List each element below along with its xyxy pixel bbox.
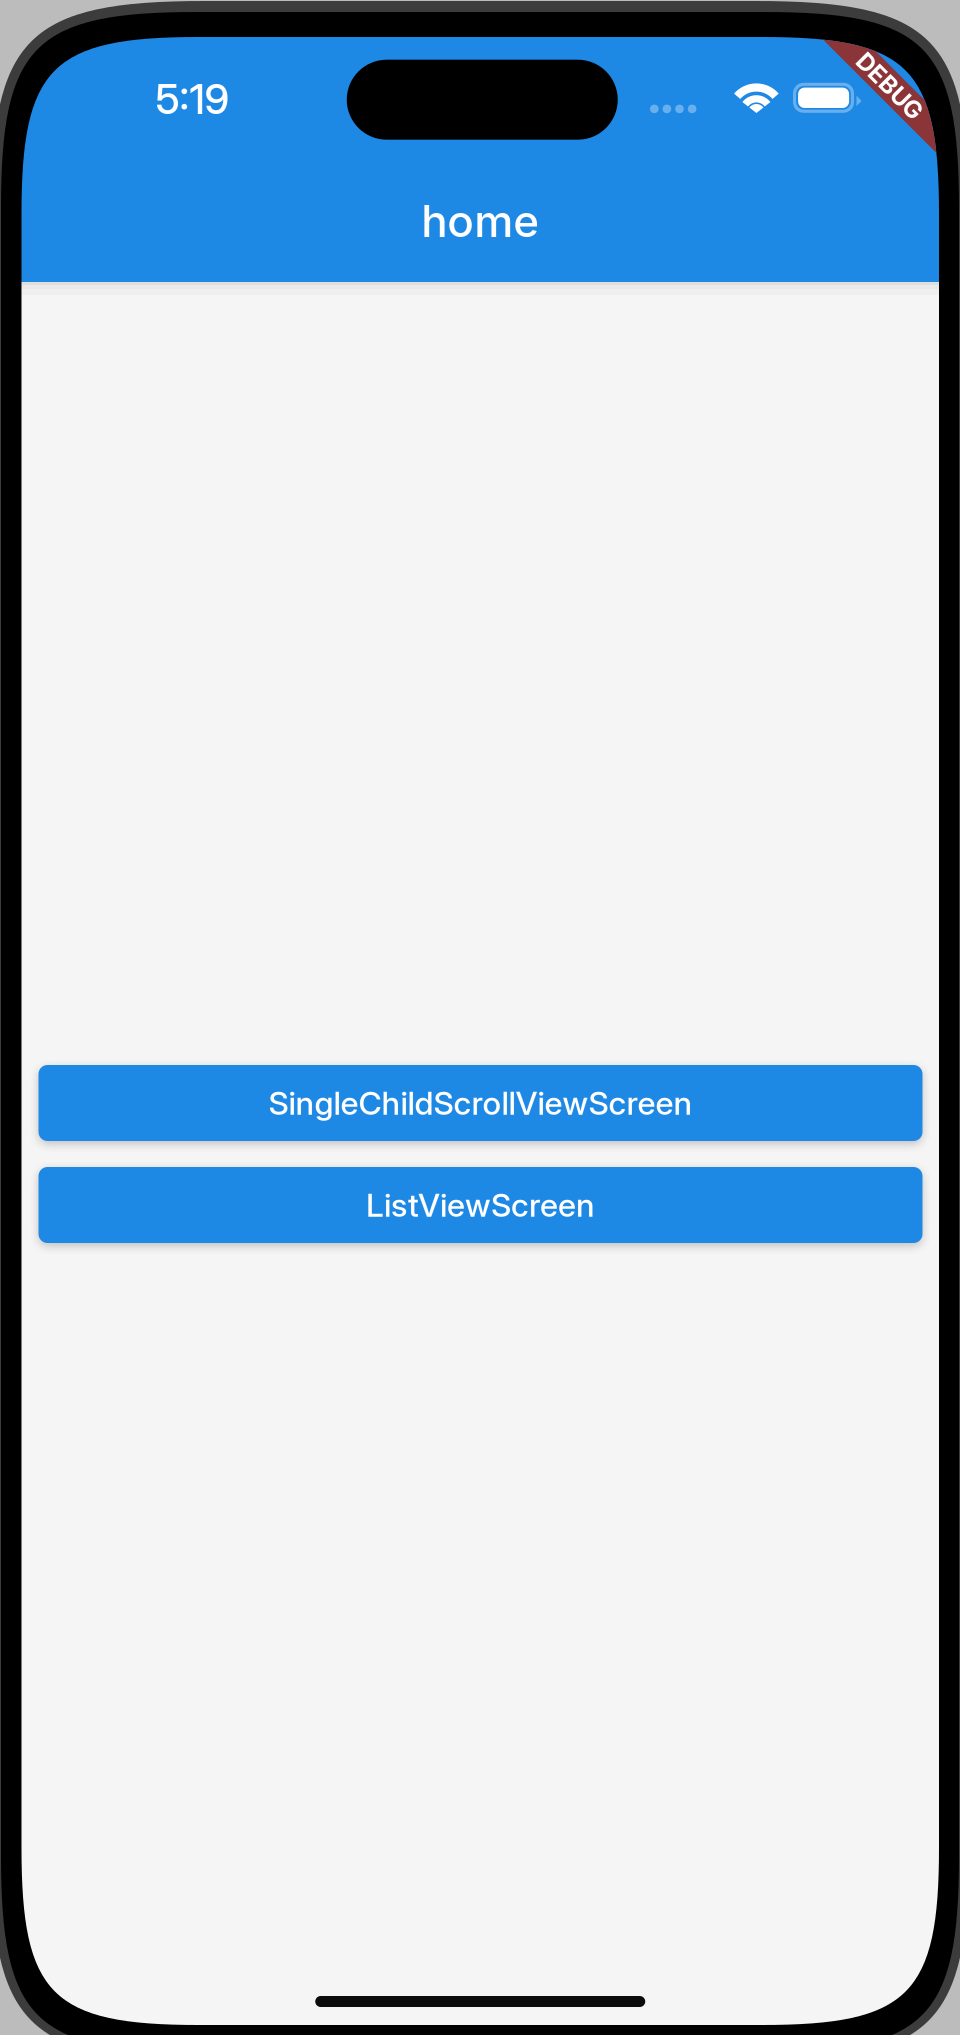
button[interactable]: SingleChildScrollViewScreen <box>38 1065 922 1141</box>
staticText: SingleChildScrollViewScreen <box>268 1084 692 1122</box>
staticText: DEBUG <box>848 71 931 100</box>
staticText: ListViewScreen <box>366 1186 595 1224</box>
button[interactable]: ListViewScreen <box>38 1167 922 1243</box>
staticText: 5:19 <box>155 74 229 124</box>
staticText: home <box>421 194 539 248</box>
